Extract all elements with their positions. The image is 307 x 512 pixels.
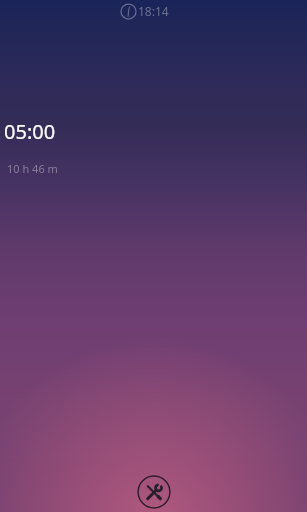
- staticText: 05:00: [4, 118, 56, 145]
- button[interactable]: Settings: [137, 475, 171, 509]
- staticText: 10 h 46 m: [7, 161, 58, 176]
- button[interactable]: 05:00: [0, 112, 307, 186]
- staticText: 18:14: [138, 3, 169, 19]
